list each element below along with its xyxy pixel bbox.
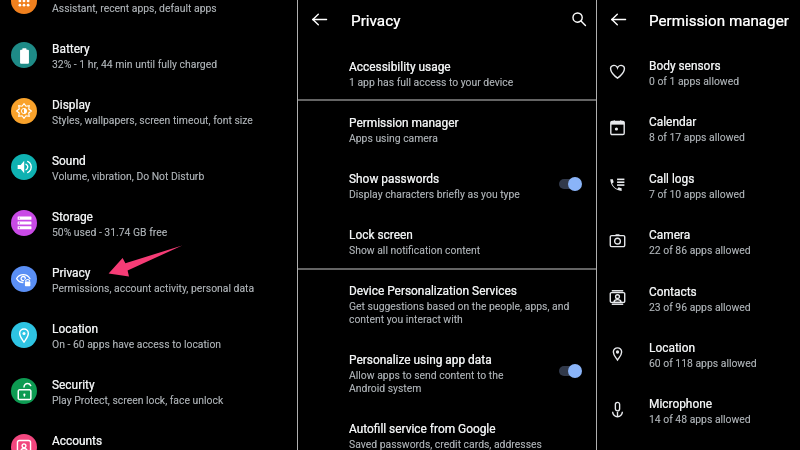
staticText: On - 60 apps have access to location: [52, 338, 222, 350]
button[interactable]: Show passwords: [298, 163, 596, 219]
button[interactable]: Assistant, recent apps, default apps: [0, 0, 297, 29]
staticText: Contacts: [649, 285, 697, 299]
staticText: Body sensors: [649, 59, 721, 73]
staticText: Volume, vibration, Do Not Disturb: [52, 170, 205, 182]
staticText: Privacy: [52, 266, 91, 280]
staticText: Android system: [349, 382, 422, 394]
staticText: Device Personalization Services: [349, 284, 517, 298]
button[interactable]: Accessibility usage: [298, 51, 596, 107]
staticText: Assistant, recent apps, default apps: [52, 2, 217, 14]
button[interactable]: Location: [597, 332, 800, 388]
staticText: Location: [52, 322, 99, 336]
staticText: Call logs: [649, 172, 695, 186]
staticText: Apps using camera: [349, 132, 438, 144]
staticText: Get suggestions based on the people, app…: [349, 300, 570, 312]
staticText: Sound: [52, 154, 86, 168]
staticText: 32% - 1 hr, 44 min until fully charged: [52, 58, 218, 70]
staticText: content you interact with: [349, 313, 463, 325]
button[interactable]: Autofill service from Google: [298, 413, 596, 450]
button[interactable]: Microphone: [597, 388, 800, 444]
button[interactable]: Permission manager: [298, 107, 596, 163]
staticText: Show all notification content: [349, 244, 481, 256]
staticText: Permission manager: [649, 12, 789, 30]
staticText: Location: [649, 341, 696, 355]
staticText: 60 of 118 apps allowed: [649, 357, 757, 369]
staticText: 14 of 48 apps allowed: [649, 413, 751, 425]
button[interactable]: Call logs: [597, 163, 800, 219]
button[interactable]: Calendar: [597, 106, 800, 162]
button[interactable]: Back: [307, 7, 331, 31]
button[interactable]: Display: [0, 85, 297, 141]
staticText: Calendar: [649, 115, 697, 129]
staticText: 7 of 10 apps allowed: [649, 188, 745, 200]
button[interactable]: Battery: [0, 29, 297, 85]
staticText: Privacy: [351, 12, 401, 30]
button[interactable]: Search: [567, 7, 591, 31]
staticText: Autofill service from Google: [349, 422, 496, 436]
staticText: 8 of 17 apps allowed: [649, 131, 745, 143]
staticText: Permissions, account activity, personal …: [52, 282, 255, 294]
staticText: Accessibility usage: [349, 60, 451, 74]
staticText: Battery: [52, 42, 90, 56]
staticText: Lock screen: [349, 228, 413, 242]
staticText: Camera: [649, 228, 691, 242]
button[interactable]: Camera: [597, 219, 800, 275]
staticText: Display characters briefly as you type: [349, 188, 520, 200]
button[interactable]: Back: [606, 7, 630, 31]
staticText: Allow apps to send content to the: [349, 369, 504, 381]
button[interactable]: Lock screen: [298, 219, 596, 275]
staticText: Storage: [52, 210, 93, 224]
staticText: 23 of 96 apps allowed: [649, 301, 751, 313]
button[interactable]: Accounts: [0, 421, 297, 450]
staticText: 1 app has full access to your device: [349, 76, 514, 88]
staticText: Styles, wallpapers, screen timeout, font…: [52, 114, 253, 126]
button[interactable]: Location: [0, 309, 297, 365]
staticText: Show passwords: [349, 172, 440, 186]
button[interactable]: Storage: [0, 197, 297, 253]
staticText: Personalize using app data: [349, 353, 492, 367]
staticText: Security: [52, 378, 95, 392]
staticText: 50% used - 31.74 GB free: [52, 226, 168, 238]
staticText: Permission manager: [349, 116, 459, 130]
staticText: 0 of 1 apps allowed: [649, 75, 740, 87]
button[interactable]: Body sensors: [597, 50, 800, 106]
button[interactable]: Device Personalization Services: [298, 275, 596, 331]
button[interactable]: Personalize using app data: [298, 344, 596, 400]
staticText: Microphone: [649, 397, 713, 411]
staticText: Accounts: [52, 434, 103, 448]
button[interactable]: Contacts: [597, 276, 800, 332]
staticText: 22 of 86 apps allowed: [649, 244, 751, 256]
button[interactable]: Sound: [0, 141, 297, 197]
staticText: Play Protect, screen lock, face unlock: [52, 394, 224, 406]
staticText: Saved passwords, credit cards, addresses: [349, 438, 542, 450]
button[interactable]: Privacy: [0, 253, 297, 309]
staticText: Display: [52, 98, 91, 112]
button[interactable]: Security: [0, 365, 297, 421]
